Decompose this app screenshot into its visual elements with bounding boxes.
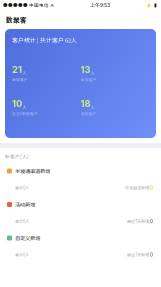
staticText: 自定义新增 [15,234,40,242]
staticText: 人 [91,70,95,75]
staticText: 人 [22,104,26,109]
staticText: 累计0人 [15,218,29,224]
button[interactable]: 自定义新增 [0,230,161,263]
staticText: 活跃客户 [80,111,96,116]
staticText: 10 [12,98,22,109]
staticText: ●●●●● 中国电信 ᗑ [3,2,54,8]
staticText: ⚡ [146,2,152,8]
staticText: 0 [150,252,153,258]
staticText: 近3日新增客户 [12,111,38,116]
staticText: 活动新增 [15,201,35,208]
staticText: 在关圈法新增: [125,185,150,191]
staticText: 数聚客 [6,15,27,24]
staticText: 累计0人 [15,185,29,191]
staticText: 人 [91,104,95,109]
staticText: 新客户(人) [5,153,29,160]
staticText: 21 [12,64,22,75]
button[interactable]: 半坡通渠道新增 [0,163,161,196]
staticText: 客户统计 | 共计客户 62人 [12,36,77,44]
staticText: 18 [80,98,90,109]
staticText: 半坡通渠道新增 [15,167,50,175]
staticText: 0 [150,218,153,224]
staticText: 人 [22,70,26,75]
staticText: 累计0人 [15,252,29,258]
button[interactable]: 活动新增 [0,196,161,230]
staticText: 0 [150,185,153,191]
staticText: 上午9:53 [90,2,110,8]
staticText: 本月客户 [80,77,96,82]
staticText: 最近7天新增: [127,252,150,258]
staticText: 新增客户 [12,77,28,82]
staticText: ▮ [152,2,157,8]
staticText: 13 [80,64,90,75]
staticText: 最近7天新增: [127,218,150,224]
